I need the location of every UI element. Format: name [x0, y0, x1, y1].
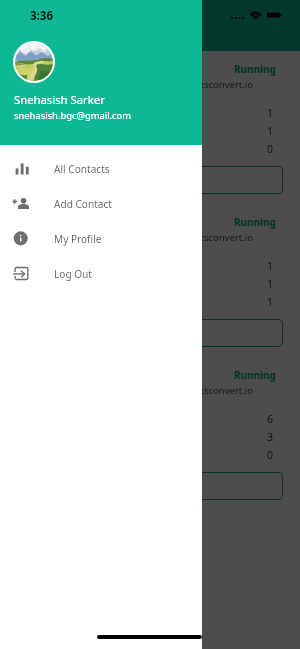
- staticText: 1: [267, 277, 274, 291]
- staticText: Snehasish Sarker: [14, 92, 105, 107]
- staticText: Healthy: [18, 278, 53, 291]
- staticText: 0: [267, 448, 274, 462]
- staticText: Log Out: [54, 267, 92, 281]
- staticText: Running: [234, 62, 276, 76]
- staticText: snehasish.bgc@gmail.com: [14, 109, 132, 122]
- staticText: Instances: [18, 260, 61, 273]
- staticText: Errors: [18, 143, 46, 156]
- staticText: Instances: [18, 107, 61, 120]
- button[interactable]: DETAILS: [18, 472, 283, 500]
- staticText: 3:36: [30, 8, 53, 24]
- staticText: Running: [234, 215, 276, 229]
- staticText: https://api-gateway.ptsconvert.io: [18, 384, 253, 397]
- button[interactable]: DETAILS: [18, 319, 283, 347]
- staticText: 1: [267, 295, 274, 309]
- button[interactable]: Mobile Server: [7, 59, 293, 204]
- button[interactable]: All Contacts: [0, 151, 202, 186]
- staticText: 3: [267, 430, 274, 444]
- staticText: My Profile: [54, 232, 102, 246]
- staticText: 6: [267, 412, 274, 426]
- staticText: Mobile Server: [18, 62, 91, 76]
- staticText: 1: [267, 106, 274, 120]
- staticText: 0: [267, 142, 274, 156]
- staticText: https://webapp-server.ptsconvert.io: [18, 231, 253, 244]
- staticText: 1: [267, 259, 274, 273]
- staticText: Running: [234, 368, 276, 382]
- staticText: All Contacts: [54, 162, 110, 176]
- button[interactable]: API Server: [7, 365, 293, 510]
- staticText: 1: [267, 124, 274, 138]
- staticText: https://mobile-backend.ptsconvert.io: [18, 78, 253, 91]
- button[interactable]: Web Server: [7, 212, 293, 357]
- button[interactable]: My Profile: [0, 221, 202, 256]
- button[interactable]: DETAILS: [18, 166, 283, 194]
- button[interactable]: Log Out: [0, 256, 202, 291]
- staticText: Add Contact: [54, 197, 113, 211]
- button[interactable]: Add Contact: [0, 186, 202, 221]
